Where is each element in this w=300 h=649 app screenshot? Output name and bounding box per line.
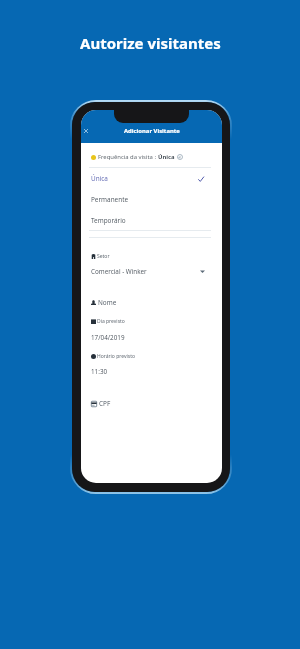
button[interactable]: Única xyxy=(81,168,222,189)
staticText: Única xyxy=(158,153,175,161)
staticText: Setor xyxy=(97,253,110,260)
staticText: Única xyxy=(91,174,108,183)
staticText: 17/04/2019 xyxy=(91,333,125,342)
staticText: Autorize visitantes xyxy=(80,33,221,53)
staticText: Frequência da visita : xyxy=(98,153,158,161)
staticText: Temporário xyxy=(91,216,126,225)
staticText: Nome xyxy=(98,298,117,307)
staticText: Adicionar Visitante xyxy=(124,127,180,135)
button[interactable]: Temporário xyxy=(81,210,222,231)
staticText: Permanente xyxy=(91,195,129,204)
staticText: Comercial - Winker xyxy=(91,267,147,276)
staticText: CPF xyxy=(99,399,111,408)
staticText: Horário previsto xyxy=(97,353,135,360)
button[interactable]: Fechar xyxy=(81,124,93,138)
button[interactable]: Permanente xyxy=(81,189,222,210)
staticText: 11:30 xyxy=(91,367,108,376)
staticText: Dia previsto xyxy=(97,318,125,325)
